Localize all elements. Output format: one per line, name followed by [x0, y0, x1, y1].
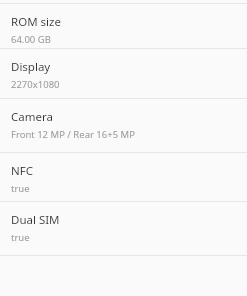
- staticText: Dual SIM: [11, 212, 60, 228]
- staticText: Front 12 MP / Rear 16+5 MP: [11, 128, 135, 141]
- staticText: ROM size: [11, 14, 61, 30]
- staticText: Camera: [11, 109, 53, 125]
- button[interactable]: NFC: [0, 153, 247, 201]
- staticText: NFC: [11, 163, 33, 179]
- staticText: 64.00 GB: [11, 33, 51, 46]
- button[interactable]: ROM size: [0, 4, 247, 48]
- staticText: true: [11, 231, 30, 244]
- button[interactable]: Display: [0, 49, 247, 98]
- staticText: true: [11, 182, 30, 195]
- button[interactable]: Camera: [0, 99, 247, 152]
- button[interactable]: Dual SIM: [0, 202, 247, 255]
- staticText: Display: [11, 59, 51, 75]
- staticText: 2270x1080: [11, 78, 60, 91]
